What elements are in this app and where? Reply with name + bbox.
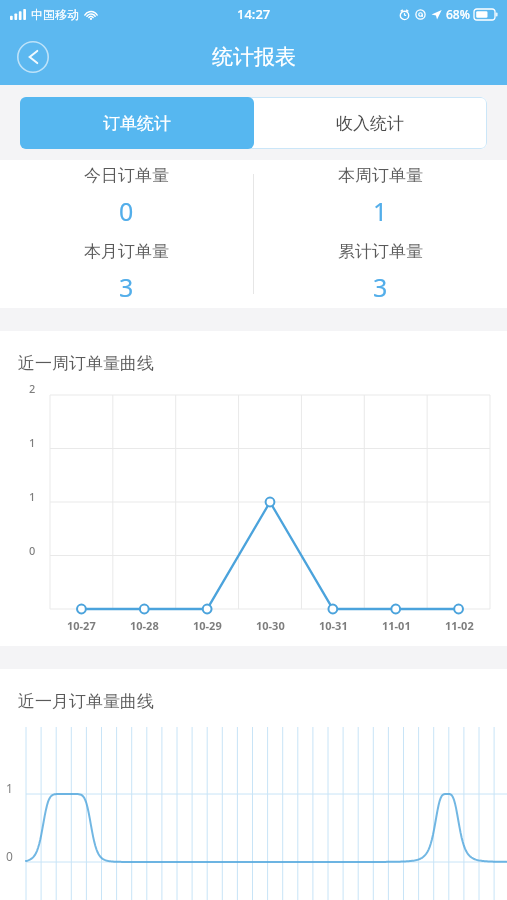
staticText: 近一月订单量曲线 (18, 691, 154, 712)
staticText: 14:27 (237, 5, 271, 23)
staticText: 1 (29, 489, 36, 504)
button[interactable]: 收入统计 (253, 97, 487, 149)
staticText: 68% (446, 6, 470, 22)
staticText: 近一周订单量曲线 (18, 353, 154, 374)
staticText: 订单统计 (103, 113, 171, 134)
staticText: 1 (6, 780, 13, 796)
staticText: 统计报表 (212, 44, 296, 70)
staticText: 1 (373, 194, 388, 228)
staticText: 0 (29, 543, 36, 558)
staticText: 0 (6, 848, 13, 864)
staticText: 10-27 (67, 618, 96, 633)
staticText: 10-29 (193, 618, 222, 633)
staticText: 10-31 (319, 618, 348, 633)
staticText: 1 (29, 435, 36, 450)
staticText: 累计订单量 (338, 241, 423, 262)
staticText: 10-28 (130, 618, 159, 633)
staticText: 3 (119, 270, 134, 304)
staticText: 收入统计 (336, 113, 404, 134)
staticText: 本月订单量 (84, 241, 169, 262)
staticText: 11-02 (445, 618, 474, 633)
staticText: 0 (119, 194, 134, 228)
staticText: 10-30 (256, 618, 285, 633)
button[interactable]: 订单统计 (20, 97, 254, 149)
staticText: 11-01 (382, 618, 411, 633)
staticText: 中国移动 (31, 7, 79, 22)
button[interactable] (20, 97, 253, 149)
staticText: 本周订单量 (338, 165, 423, 186)
button[interactable]: Back (16, 40, 50, 74)
staticText: 3 (373, 270, 388, 304)
staticText: 今日订单量 (84, 165, 169, 186)
staticText: 2 (29, 381, 36, 396)
